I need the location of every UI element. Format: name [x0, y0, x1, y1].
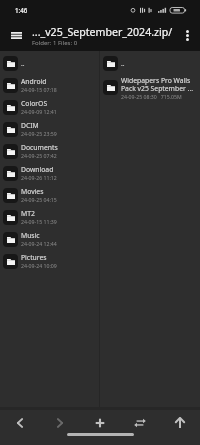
staticText: 24-09-09 12:41 — [21, 108, 57, 115]
staticText: 24-09-25 23:59 — [21, 130, 57, 137]
button[interactable]: Pictures — [0, 250, 99, 272]
staticText: Movies — [21, 187, 44, 196]
staticText: Widepapers Pro Walls Pack v25 September … — [121, 76, 197, 93]
staticText: DCIM — [21, 121, 39, 130]
staticText: 24-09-15 07:18 — [21, 86, 57, 93]
staticText: 24-09-24 10:09 — [21, 262, 57, 269]
button[interactable]: Movies — [0, 184, 99, 206]
staticText: ..._v25_September_2024.zip/ — [32, 25, 173, 39]
button[interactable]: Back — [0, 410, 40, 435]
staticText: Music — [21, 231, 40, 240]
staticText: Folder: 1 Files: 0 — [32, 39, 78, 47]
staticText: 1:46 — [15, 6, 28, 14]
staticText: ColorOS — [21, 99, 48, 108]
staticText: Documents — [21, 143, 58, 152]
staticText: 24-09-25 04:15 — [21, 196, 57, 203]
staticText: Download — [21, 165, 54, 174]
staticText: .. — [121, 59, 125, 68]
staticText: 24-09-25 07:42 — [21, 152, 57, 159]
button[interactable]: Add — [80, 410, 120, 435]
button[interactable]: Menu — [0, 16, 32, 51]
button[interactable]: Documents — [0, 140, 99, 162]
staticText: Pictures — [21, 253, 47, 262]
button[interactable]: Download — [0, 162, 99, 184]
staticText: .. — [21, 59, 25, 68]
button[interactable]: ColorOS — [0, 96, 99, 118]
button[interactable]: Switch pane — [120, 410, 160, 435]
staticText: 24-09-25 08:30 715.05M — [121, 93, 182, 100]
button[interactable]: .. — [0, 52, 99, 74]
staticText: Android — [21, 77, 47, 86]
button[interactable]: MT2 — [0, 206, 99, 228]
staticText: 24-09-15 11:39 — [21, 218, 57, 225]
button[interactable]: Music — [0, 228, 99, 250]
staticText: 24-09-26 11:12 — [21, 174, 57, 181]
button[interactable]: Widepapers Pro Walls Pack v25 September … — [100, 74, 200, 101]
button[interactable]: Forward — [40, 410, 80, 435]
button[interactable]: .. — [100, 52, 200, 74]
button[interactable]: Up — [160, 410, 200, 435]
button[interactable]: Android — [0, 74, 99, 96]
button[interactable]: DCIM — [0, 118, 99, 140]
staticText: MT2 — [21, 209, 35, 218]
staticText: 24-09-24 12:44 — [21, 240, 57, 247]
button[interactable]: More options — [174, 16, 200, 51]
